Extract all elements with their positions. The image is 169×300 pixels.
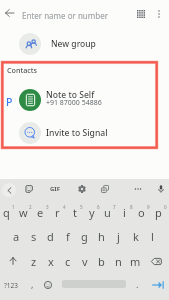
button[interactable]: v bbox=[76, 249, 93, 273]
button[interactable]: P bbox=[0, 84, 169, 116]
button[interactable]: , bbox=[24, 274, 40, 296]
staticText: 0 bbox=[164, 204, 167, 210]
staticText: o bbox=[138, 205, 145, 220]
staticText: Contacts bbox=[7, 65, 38, 75]
button[interactable]: o bbox=[135, 200, 152, 224]
staticText: f bbox=[66, 229, 70, 244]
staticText: l bbox=[151, 229, 154, 244]
staticText: Invite to Signal bbox=[46, 127, 108, 139]
button[interactable]: Back bbox=[1, 4, 18, 21]
button[interactable]: x bbox=[42, 249, 59, 273]
staticText: 4 bbox=[63, 204, 66, 210]
button[interactable]: u bbox=[101, 200, 118, 224]
button[interactable]: i bbox=[118, 200, 135, 224]
button[interactable]: e bbox=[34, 200, 51, 224]
button[interactable]: ?123 bbox=[0, 274, 22, 296]
staticText: +91 87000 54886 bbox=[46, 98, 102, 108]
button[interactable]: f bbox=[59, 224, 76, 248]
staticText: 1 bbox=[12, 204, 15, 210]
button[interactable]: Shift bbox=[0, 249, 25, 273]
staticText: j bbox=[117, 229, 120, 244]
button[interactable]: Clipboard bbox=[97, 181, 113, 196]
staticText: e bbox=[37, 205, 44, 220]
button[interactable]: j bbox=[110, 224, 127, 248]
staticText: b bbox=[98, 254, 105, 269]
button[interactable]: t bbox=[68, 200, 85, 224]
button[interactable]: Voice input bbox=[153, 181, 169, 196]
staticText: , bbox=[31, 278, 34, 290]
staticText: ?123 bbox=[4, 281, 18, 290]
staticText: k bbox=[133, 229, 139, 244]
button[interactable]: More options bbox=[151, 6, 167, 22]
button[interactable]: q bbox=[0, 200, 17, 224]
button[interactable]: More bbox=[130, 181, 146, 196]
staticText: Enter name or number bbox=[22, 10, 109, 21]
staticText: 7 bbox=[113, 204, 116, 210]
staticText: m bbox=[130, 254, 141, 269]
staticText: New group bbox=[51, 38, 96, 50]
staticText: g bbox=[81, 229, 88, 244]
button[interactable]: z bbox=[25, 249, 42, 273]
button[interactable]: h bbox=[93, 224, 110, 248]
button[interactable]: Backspace bbox=[144, 249, 169, 273]
staticText: a bbox=[13, 229, 20, 244]
button[interactable]: w bbox=[17, 200, 34, 224]
staticText: d bbox=[47, 229, 54, 244]
button[interactable]: Settings bbox=[74, 181, 90, 196]
button[interactable]: n bbox=[110, 249, 127, 273]
button[interactable]: l bbox=[144, 224, 161, 248]
button[interactable]: m bbox=[127, 249, 144, 273]
staticText: i bbox=[123, 205, 126, 220]
button[interactable]: b bbox=[93, 249, 110, 273]
button[interactable]: Scan QR code bbox=[133, 6, 149, 22]
staticText: s bbox=[31, 229, 37, 244]
staticText: 6 bbox=[97, 204, 100, 210]
button[interactable]: Stickers bbox=[21, 181, 37, 196]
staticText: q bbox=[3, 205, 10, 220]
staticText: y bbox=[89, 205, 95, 220]
staticText: t bbox=[73, 205, 77, 220]
staticText: Note to Self bbox=[46, 89, 95, 101]
staticText: . bbox=[136, 278, 139, 290]
button[interactable]: . bbox=[129, 274, 145, 296]
button[interactable]: GIF bbox=[47, 181, 63, 196]
staticText: 5 bbox=[80, 204, 83, 210]
staticText: p bbox=[155, 205, 162, 220]
staticText: 3 bbox=[46, 204, 49, 210]
button[interactable]: New group bbox=[0, 30, 169, 57]
staticText: w bbox=[19, 205, 28, 220]
button[interactable]: s bbox=[25, 224, 42, 248]
staticText: r bbox=[55, 205, 60, 220]
button[interactable]: Previous bbox=[2, 183, 16, 197]
button[interactable]: y bbox=[85, 200, 102, 224]
staticText: c bbox=[65, 254, 71, 269]
staticText: P bbox=[6, 95, 13, 109]
button[interactable]: d bbox=[42, 224, 59, 248]
staticText: x bbox=[48, 254, 54, 269]
button[interactable]: Emoji bbox=[40, 274, 56, 296]
staticText: 2 bbox=[29, 204, 32, 210]
button[interactable]: c bbox=[59, 249, 76, 273]
staticText: u bbox=[104, 205, 111, 220]
staticText: 8 bbox=[130, 204, 133, 210]
button[interactable]: g bbox=[76, 224, 93, 248]
button[interactable]: p bbox=[152, 200, 169, 224]
button[interactable]: a bbox=[8, 224, 25, 248]
staticText: n bbox=[115, 254, 122, 269]
button[interactable]: Invite to Signal bbox=[0, 118, 169, 147]
staticText: v bbox=[82, 254, 88, 269]
button[interactable]: r bbox=[51, 200, 68, 224]
button[interactable]: k bbox=[127, 224, 144, 248]
staticText: h bbox=[98, 229, 105, 244]
staticText: z bbox=[31, 254, 37, 269]
staticText: 9 bbox=[147, 204, 150, 210]
button[interactable]: Enter bbox=[147, 274, 169, 296]
staticText: GIF bbox=[50, 185, 60, 193]
